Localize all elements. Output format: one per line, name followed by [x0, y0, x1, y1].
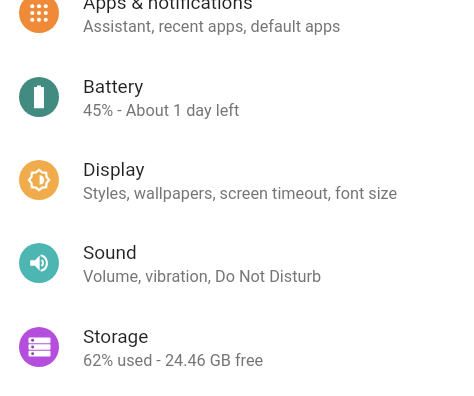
staticText: 45% - About 1 day left: [83, 101, 240, 120]
staticText: 62% used - 24.46 GB free: [83, 351, 264, 370]
staticText: Display: [83, 158, 145, 180]
staticText: Assistant, recent apps, default apps: [83, 17, 341, 36]
button[interactable]: Storage: [0, 305, 474, 388]
button[interactable]: Display: [0, 138, 474, 221]
staticText: Sound: [83, 241, 137, 263]
staticText: Styles, wallpapers, screen timeout, font…: [83, 184, 398, 203]
button[interactable]: Battery: [0, 55, 474, 138]
button[interactable]: Sound: [0, 221, 474, 304]
staticText: Volume, vibration, Do Not Disturb: [83, 267, 322, 286]
staticText: Battery: [83, 75, 144, 97]
button[interactable]: Apps & notifications: [0, 0, 474, 54]
staticText: Storage: [83, 325, 149, 347]
staticText: Apps & notifications: [83, 0, 253, 13]
